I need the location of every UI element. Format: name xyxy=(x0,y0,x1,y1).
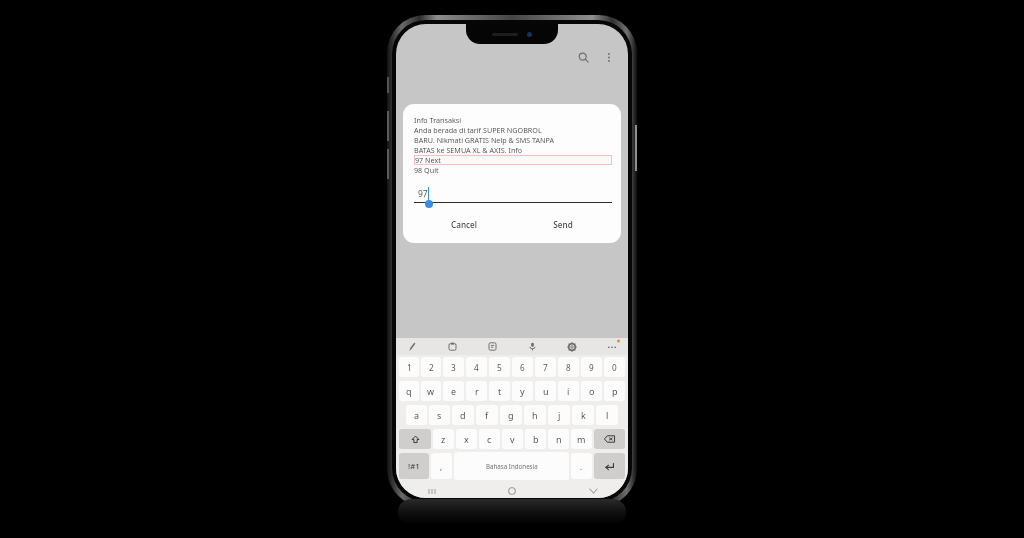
button[interactable]: 7 xyxy=(535,357,556,377)
button[interactable]: Search xyxy=(570,44,596,70)
button[interactable]: 4 xyxy=(466,357,487,377)
button[interactable]: 6 xyxy=(512,357,533,377)
staticText: b xyxy=(533,433,539,445)
button[interactable]: More options xyxy=(598,46,620,68)
staticText: t xyxy=(498,385,502,397)
button[interactable]: e xyxy=(443,381,464,401)
button[interactable]: More keyboard options xyxy=(604,339,620,354)
button[interactable]: h xyxy=(524,405,546,425)
button[interactable]: w xyxy=(421,381,441,401)
staticText: h xyxy=(532,409,538,421)
button[interactable]: Stickers xyxy=(484,339,500,354)
button[interactable]: r xyxy=(466,381,487,401)
button[interactable]: x xyxy=(456,429,477,449)
staticText: . xyxy=(580,461,583,472)
button[interactable]: 3 xyxy=(443,357,464,377)
staticText: BATAS ke SEMUA XL & AXIS. Info xyxy=(414,145,523,155)
button[interactable]: t xyxy=(489,381,510,401)
staticText: , xyxy=(440,461,443,472)
staticText: BARU. Nikmati GRATIS Nelp & SMS TANPA xyxy=(414,135,555,145)
button[interactable]: 2 xyxy=(421,357,441,377)
staticText: q xyxy=(406,385,412,397)
button[interactable]: Recent apps xyxy=(422,484,440,498)
staticText: w xyxy=(427,385,435,397)
button[interactable]: o xyxy=(581,381,602,401)
button[interactable]: c xyxy=(479,429,500,449)
button[interactable]: , xyxy=(431,453,452,479)
staticText: 1 xyxy=(407,362,412,373)
staticText: o xyxy=(589,385,595,397)
staticText: n xyxy=(556,433,562,445)
button[interactable]: 5 xyxy=(489,357,510,377)
button[interactable]: d xyxy=(452,405,474,425)
button[interactable]: n xyxy=(548,429,569,449)
button[interactable]: u xyxy=(535,381,556,401)
button[interactable]: Home xyxy=(503,484,521,498)
button[interactable]: q xyxy=(399,381,419,401)
button[interactable]: 8 xyxy=(558,357,579,377)
staticText: 97 Next xyxy=(415,155,441,165)
button[interactable]: Clipboard xyxy=(444,339,460,354)
staticText: j xyxy=(558,409,561,421)
button[interactable]: Send xyxy=(513,215,612,233)
staticText: 3 xyxy=(451,362,456,373)
staticText: g xyxy=(508,409,514,421)
staticText: z xyxy=(441,433,446,445)
staticText: d xyxy=(460,409,466,421)
button[interactable]: k xyxy=(572,405,594,425)
staticText: 97 xyxy=(418,188,428,200)
staticText: 8 xyxy=(566,362,571,373)
button[interactable]: j xyxy=(548,405,570,425)
button[interactable]: a xyxy=(406,405,427,425)
staticText: r xyxy=(475,385,479,397)
button[interactable]: Backspace xyxy=(594,429,625,449)
staticText: 0 xyxy=(612,362,617,373)
button[interactable]: i xyxy=(558,381,579,401)
button[interactable]: Handwriting xyxy=(404,339,420,354)
staticText: u xyxy=(543,385,549,397)
staticText: m xyxy=(577,433,586,445)
button[interactable]: Bahasa Indonesia xyxy=(454,452,569,480)
button[interactable]: Cancel xyxy=(414,215,513,233)
staticText: k xyxy=(581,409,586,421)
button[interactable]: g xyxy=(500,405,522,425)
button[interactable]: !#1 xyxy=(399,453,429,479)
staticText: c xyxy=(487,433,492,445)
staticText: f xyxy=(485,409,489,421)
button[interactable]: p xyxy=(604,381,625,401)
button[interactable]: Enter xyxy=(594,453,625,479)
button[interactable]: Shift xyxy=(399,429,431,449)
staticText: Anda berada di tarif SUPER NGOBROL xyxy=(414,125,542,135)
staticText: 6 xyxy=(520,362,525,373)
button[interactable]: Keyboard settings xyxy=(564,339,580,354)
button[interactable]: 1 xyxy=(399,357,419,377)
staticText: Send xyxy=(553,219,573,230)
button[interactable]: f xyxy=(476,405,498,425)
staticText: y xyxy=(520,385,525,397)
staticText: Bahasa Indonesia xyxy=(486,462,538,470)
button[interactable]: 97 Next xyxy=(414,155,612,165)
staticText: Cancel xyxy=(451,219,477,230)
button[interactable]: l xyxy=(596,405,618,425)
staticText: Info Transaksi xyxy=(414,115,462,125)
staticText: a xyxy=(414,409,420,421)
staticText: 7 xyxy=(543,362,548,373)
staticText: e xyxy=(451,385,457,397)
staticText: p xyxy=(612,385,618,397)
button[interactable]: Hide keyboard xyxy=(584,484,602,498)
staticText: x xyxy=(464,433,469,445)
button[interactable]: y xyxy=(512,381,533,401)
button[interactable]: s xyxy=(429,405,450,425)
button[interactable]: Voice input xyxy=(524,339,540,354)
button[interactable]: m xyxy=(571,429,592,449)
staticText: v xyxy=(510,433,515,445)
staticText: 98 Quit xyxy=(414,165,439,175)
staticText: 9 xyxy=(589,362,594,373)
button[interactable]: b xyxy=(525,429,546,449)
button[interactable]: . xyxy=(571,453,592,479)
button[interactable]: 9 xyxy=(581,357,602,377)
staticText: i xyxy=(567,385,570,397)
button[interactable]: v xyxy=(502,429,523,449)
button[interactable]: z xyxy=(433,429,454,449)
button[interactable]: 0 xyxy=(604,357,625,377)
